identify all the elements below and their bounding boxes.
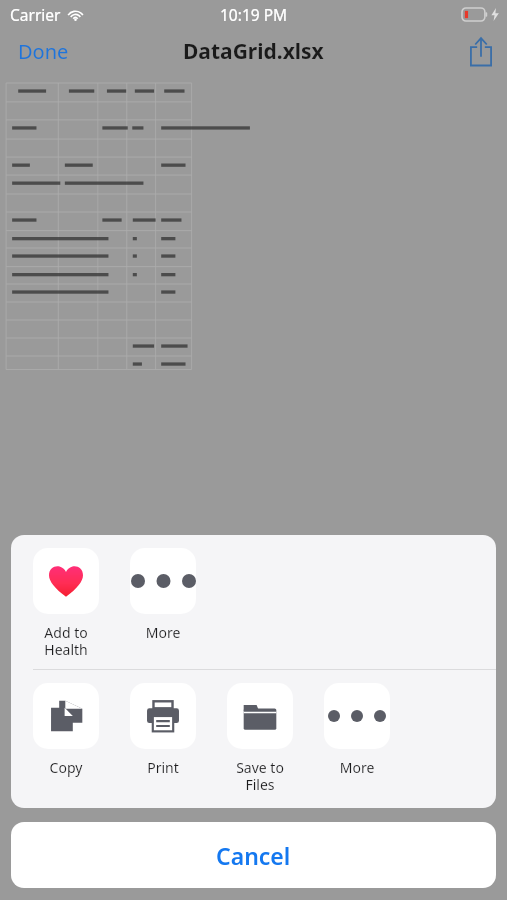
staticText: Carrier xyxy=(10,4,61,25)
staticText: Done xyxy=(18,38,69,65)
staticText: Copy xyxy=(33,758,99,777)
button[interactable]: Add to Health xyxy=(33,548,99,659)
button[interactable]: Share xyxy=(455,31,507,73)
button[interactable]: Done xyxy=(0,30,87,73)
staticText: Cancel xyxy=(216,840,291,871)
staticText: Print xyxy=(130,758,196,777)
staticText: 10:19 PM xyxy=(220,4,288,25)
button[interactable]: Copy xyxy=(33,683,99,777)
button[interactable]: Print xyxy=(130,683,196,777)
button[interactable]: Cancel xyxy=(11,822,496,888)
staticText: Add to Health xyxy=(33,623,99,659)
staticText: Save to Files xyxy=(227,758,293,794)
staticText: DataGrid.xlsx xyxy=(183,37,324,66)
button[interactable]: More xyxy=(130,548,196,642)
button[interactable]: More xyxy=(324,683,390,777)
staticText: More xyxy=(130,623,196,642)
staticText: More xyxy=(324,758,390,777)
button[interactable]: Save to Files xyxy=(227,683,293,794)
